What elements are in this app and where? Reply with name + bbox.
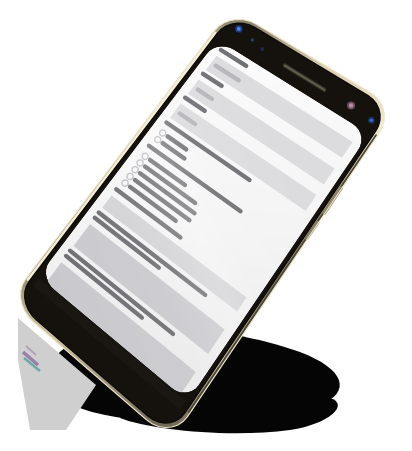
button[interactable]: Phone mockup showing a lead intake form	[0, 0, 412, 451]
